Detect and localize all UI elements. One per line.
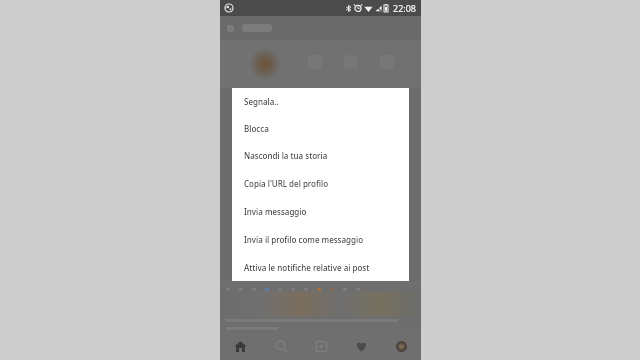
button[interactable]: Profile — [381, 333, 421, 360]
button[interactable]: New post — [301, 333, 341, 360]
button[interactable]: Segnala.. — [232, 88, 409, 115]
button[interactable]: Home — [220, 333, 261, 360]
button[interactable]: Blocca — [232, 115, 409, 142]
button[interactable]: Invia il profilo come messaggio — [232, 225, 409, 253]
staticText: Nascondi la tua storia — [244, 150, 328, 161]
button[interactable]: Nascondi la tua storia — [232, 142, 409, 169]
staticText: Blocca — [244, 123, 269, 134]
button[interactable]: Attiva le notifiche relative ai post — [232, 253, 409, 281]
button[interactable]: Activity — [341, 333, 381, 360]
staticText: Segnala.. — [244, 96, 279, 107]
button[interactable]: Invia messaggio — [232, 197, 409, 225]
staticText: Invia messaggio — [244, 206, 307, 217]
staticText: Attiva le notifiche relative ai post — [244, 262, 370, 273]
staticText: Copia l'URL del profilo — [244, 178, 329, 189]
staticText: Invia il profilo come messaggio — [244, 234, 364, 245]
button[interactable]: Copia l'URL del profilo — [232, 169, 409, 197]
staticText: 22:08 — [393, 2, 417, 14]
